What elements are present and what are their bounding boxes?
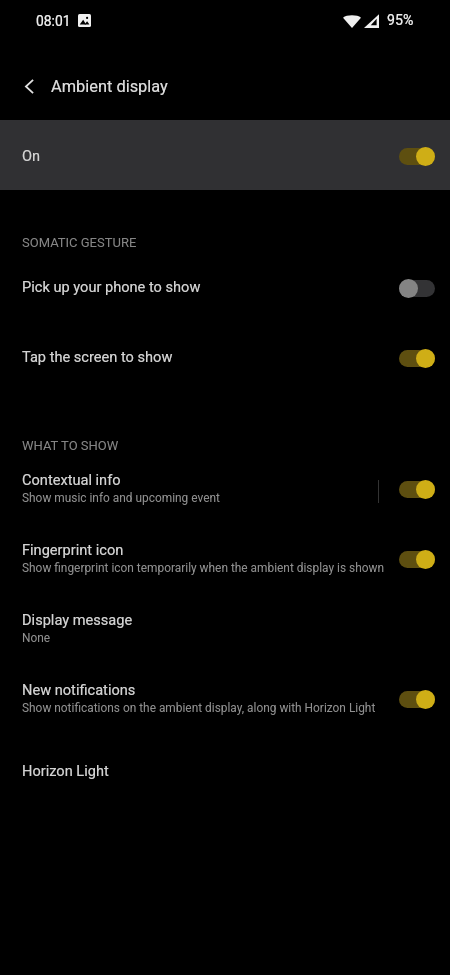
button[interactable]: Display message [0,592,450,662]
button[interactable]: Contextual info [0,452,450,522]
button[interactable]: Tap the screen to show [0,321,450,391]
button[interactable]: On [399,146,435,166]
button[interactable]: Off [399,278,435,298]
staticText: 95% [387,12,414,29]
button[interactable]: Pick up your phone to show [0,251,450,321]
button[interactable]: On [399,348,435,368]
staticText: Horizon Light [22,762,109,779]
staticText: Pick up your phone to show [22,278,201,295]
staticText: Contextual info [22,471,121,488]
button[interactable]: On [399,549,435,569]
staticText: WHAT TO SHOW [22,438,119,453]
staticText: 08:01 [36,13,71,29]
button[interactable]: New notifications [0,662,450,732]
button[interactable]: On [0,120,450,190]
staticText: Show fingerprint icon temporarily when t… [22,561,384,575]
staticText: Show music info and upcoming event [22,491,220,505]
button[interactable]: Horizon Light [0,735,450,805]
staticText: SOMATIC GESTURE [22,235,137,250]
staticText: None [22,631,51,645]
button[interactable]: On [399,479,435,499]
button[interactable]: Back [13,70,45,102]
staticText: Display message [22,611,133,628]
staticText: Show notifications on the ambient displa… [22,701,376,715]
staticText: On [22,147,41,164]
staticText: Tap the screen to show [22,348,173,365]
staticText: New notifications [22,681,136,698]
button[interactable]: Fingerprint icon [0,522,450,592]
staticText: Fingerprint icon [22,541,124,558]
staticText: Ambient display [51,77,168,96]
button[interactable]: On [399,689,435,709]
